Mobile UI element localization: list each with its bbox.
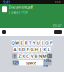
button[interactable]: return — [44, 60, 52, 65]
staticText: G — [30, 47, 33, 52]
staticText: 2 pages • PDF — [8, 11, 27, 14]
staticText: K — [44, 47, 46, 52]
button[interactable]: O — [45, 40, 48, 46]
button[interactable]: V — [30, 53, 34, 59]
staticText: Q — [12, 40, 15, 45]
button[interactable]: A — [13, 47, 17, 52]
staticText: return — [44, 57, 52, 68]
button[interactable]: C — [26, 53, 30, 59]
button[interactable]: ⌫ — [47, 53, 52, 59]
button[interactable]: U — [36, 40, 40, 46]
staticText: U — [37, 40, 40, 45]
staticText: I — [42, 40, 43, 45]
button[interactable]: K — [43, 47, 46, 52]
staticText: space — [26, 60, 36, 65]
button[interactable]: L — [47, 47, 51, 52]
staticText: ••• — [55, 0, 61, 5]
staticText: D — [22, 47, 25, 52]
staticText: ⇧ — [13, 54, 16, 58]
staticText: 09:41 — [53, 24, 62, 28]
button[interactable]: F — [26, 47, 30, 52]
staticText: R — [25, 40, 27, 45]
button[interactable]: space — [19, 60, 43, 65]
staticText: J — [40, 47, 41, 52]
staticText: P — [50, 40, 52, 45]
staticText: 123 — [12, 60, 18, 65]
staticText: Document.pdf — [8, 4, 32, 10]
button[interactable]: E — [20, 40, 23, 46]
staticText: H — [35, 47, 38, 52]
staticText: A — [14, 47, 17, 52]
button[interactable]: X — [22, 53, 25, 59]
button[interactable]: T — [28, 40, 32, 46]
button[interactable]: P — [49, 40, 53, 46]
button[interactable]: Z — [18, 53, 21, 59]
staticText: E — [20, 40, 22, 45]
staticText: N — [39, 53, 42, 59]
button[interactable]: J — [39, 47, 42, 52]
button[interactable]: ⇧ — [12, 53, 17, 59]
staticText: X — [23, 53, 25, 59]
staticText: V — [31, 53, 33, 59]
staticText: T — [29, 40, 31, 45]
button[interactable]: R — [24, 40, 27, 46]
button[interactable]: 123 — [12, 60, 18, 65]
button[interactable]: D — [22, 47, 25, 52]
staticText: Y — [33, 40, 35, 45]
staticText: O — [45, 40, 48, 45]
staticText: L — [48, 47, 50, 52]
button[interactable]: N — [39, 53, 42, 59]
button[interactable]: Y — [32, 40, 36, 46]
button[interactable]: I — [41, 40, 44, 46]
button[interactable]: M — [43, 53, 46, 59]
staticText: W — [15, 40, 19, 45]
staticText: S — [18, 47, 20, 52]
button[interactable]: B — [34, 53, 38, 59]
button[interactable]: S — [18, 47, 21, 52]
button[interactable]: Q — [11, 40, 15, 46]
button[interactable]: G — [30, 47, 34, 52]
button[interactable]: H — [34, 47, 38, 52]
button[interactable]: W — [15, 40, 19, 46]
staticText: F — [27, 47, 29, 52]
staticText: 9:41 — [3, 0, 10, 5]
staticText: ⌫ — [46, 54, 52, 58]
staticText: Z — [18, 53, 20, 59]
staticText: C — [26, 53, 29, 59]
staticText: M — [43, 53, 47, 59]
staticText: B — [35, 53, 38, 59]
